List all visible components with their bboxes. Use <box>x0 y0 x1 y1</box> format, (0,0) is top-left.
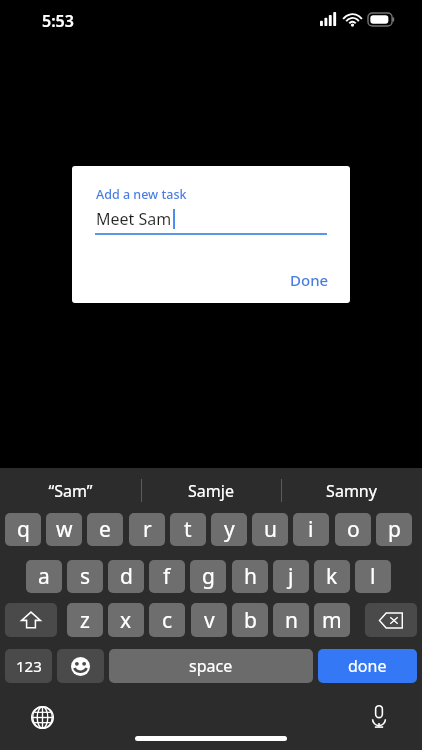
button[interactable]: Shift <box>5 603 57 637</box>
button[interactable]: x <box>108 603 144 637</box>
button[interactable]: “Sam” <box>0 468 140 513</box>
button[interactable]: Done <box>284 266 335 294</box>
staticText: y <box>224 515 235 544</box>
button[interactable]: l <box>355 560 391 593</box>
button[interactable]: y <box>211 513 247 546</box>
button[interactable]: m <box>314 603 350 637</box>
staticText: Meet Sam <box>96 208 172 230</box>
staticText: k <box>326 562 338 591</box>
staticText: v <box>204 606 215 635</box>
staticText: Done <box>290 270 329 290</box>
button[interactable]: i <box>293 513 329 546</box>
staticText: Samje <box>188 480 234 502</box>
button[interactable]: s <box>67 560 103 593</box>
staticText: g <box>202 562 215 591</box>
button[interactable]: h <box>232 560 268 593</box>
button[interactable]: Samny <box>281 468 422 513</box>
button[interactable]: e <box>87 513 123 546</box>
button[interactable]: b <box>232 603 268 637</box>
button[interactable]: done <box>318 649 417 683</box>
button[interactable]: p <box>376 513 412 546</box>
staticText: space <box>189 655 233 677</box>
staticText: m <box>322 606 342 635</box>
button[interactable]: c <box>149 603 185 637</box>
button[interactable]: n <box>273 603 309 637</box>
staticText: q <box>17 515 30 544</box>
staticText: h <box>244 562 257 591</box>
staticText: a <box>38 562 50 591</box>
staticText: done <box>348 655 387 677</box>
staticText: Add a new task <box>96 186 187 203</box>
staticText: l <box>370 562 376 591</box>
button[interactable]: r <box>129 513 165 546</box>
staticText: Samny <box>326 480 377 502</box>
staticText: p <box>388 515 401 544</box>
staticText: 123 <box>16 656 42 676</box>
button[interactable]: Change keyboard language <box>27 702 57 732</box>
staticText: d <box>120 562 133 591</box>
staticText: z <box>80 606 90 635</box>
staticText: o <box>347 515 360 544</box>
button[interactable]: d <box>108 560 144 593</box>
button[interactable]: 123 <box>5 649 52 683</box>
button[interactable]: j <box>273 560 309 593</box>
button[interactable]: o <box>335 513 371 546</box>
staticText: j <box>288 562 294 591</box>
staticText: i <box>308 515 314 544</box>
staticText: 5:53 <box>42 10 74 32</box>
staticText: r <box>143 515 152 544</box>
staticText: “Sam” <box>48 480 93 502</box>
button[interactable]: Voice input <box>364 701 394 731</box>
button[interactable]: t <box>170 513 206 546</box>
button[interactable]: a <box>26 560 62 593</box>
staticText: b <box>244 606 257 635</box>
button[interactable]: f <box>149 560 185 593</box>
staticText: n <box>285 606 298 635</box>
button[interactable]: q <box>5 513 41 546</box>
button[interactable]: g <box>190 560 226 593</box>
staticText: x <box>120 606 132 635</box>
staticText: t <box>184 515 192 544</box>
button[interactable]: Delete <box>365 603 417 637</box>
button[interactable]: z <box>67 603 103 637</box>
staticText: c <box>162 606 173 635</box>
button[interactable]: Emoji <box>57 649 104 683</box>
staticText: f <box>163 562 171 591</box>
staticText: s <box>80 562 91 591</box>
staticText: u <box>264 515 277 544</box>
staticText: w <box>56 515 73 544</box>
button[interactable]: Samje <box>140 468 281 513</box>
button[interactable]: k <box>314 560 350 593</box>
button[interactable]: w <box>46 513 82 546</box>
button[interactable]: v <box>191 603 227 637</box>
button[interactable]: space <box>109 649 313 683</box>
staticText: e <box>99 515 111 544</box>
button[interactable]: u <box>252 513 288 546</box>
